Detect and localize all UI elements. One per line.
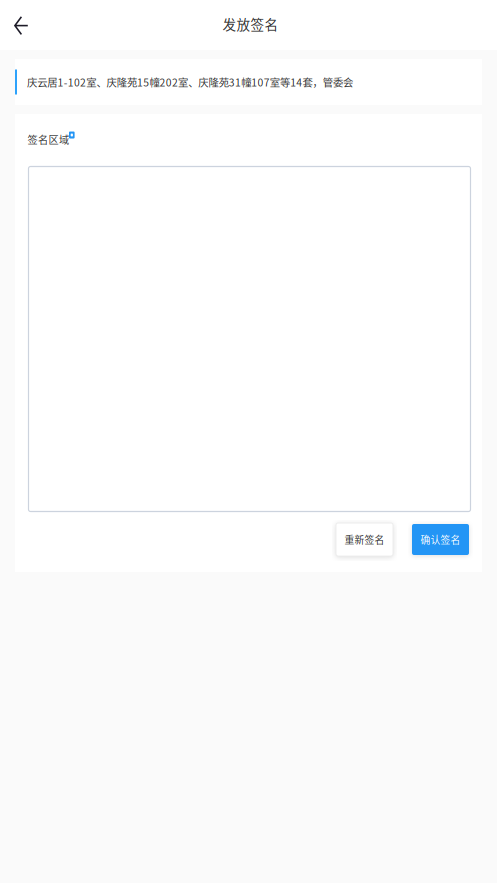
staticText: 庆云居1-102室、庆隆苑15幢202室、庆隆苑31幢107室等14套，管委会	[27, 74, 353, 90]
staticText: 签名区域	[27, 132, 69, 147]
button[interactable]: Back	[0, 0, 42, 50]
staticText: 重新签名	[344, 532, 384, 547]
staticText: 发放签名	[222, 14, 278, 34]
staticText: 确认签名	[420, 532, 460, 547]
button[interactable]: 重新签名	[336, 523, 393, 556]
button[interactable]: 确认签名	[412, 524, 469, 555]
